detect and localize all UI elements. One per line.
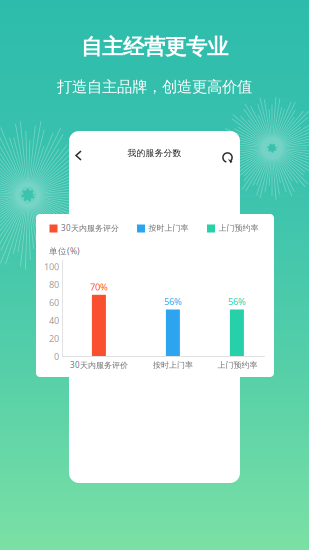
staticText: 上门预约率: [218, 223, 258, 233]
staticText: 按时上门率: [153, 360, 193, 370]
staticText: 30天内服务评分: [61, 223, 119, 233]
staticText: 单位(%): [49, 245, 80, 257]
staticText: 56%: [164, 295, 182, 308]
staticText: 打造自主品牌，创造更高价值: [57, 77, 252, 97]
staticText: 100: [44, 260, 59, 273]
staticText: 30天内服务评价: [70, 360, 128, 370]
staticText: 70%: [90, 280, 108, 293]
staticText: 80: [49, 278, 59, 291]
staticText: 按时上门率: [148, 223, 188, 233]
staticText: 0: [54, 350, 59, 362]
button[interactable]: Refresh: [212, 142, 243, 173]
staticText: 56%: [228, 295, 246, 308]
staticText: 60: [49, 296, 59, 309]
staticText: 40: [49, 314, 59, 327]
staticText: 自主经营更专业: [81, 34, 228, 60]
button[interactable]: Back: [66, 141, 91, 170]
staticText: 我的服务分数: [127, 147, 181, 159]
staticText: 20: [49, 332, 59, 345]
staticText: 上门预约率: [217, 360, 257, 370]
